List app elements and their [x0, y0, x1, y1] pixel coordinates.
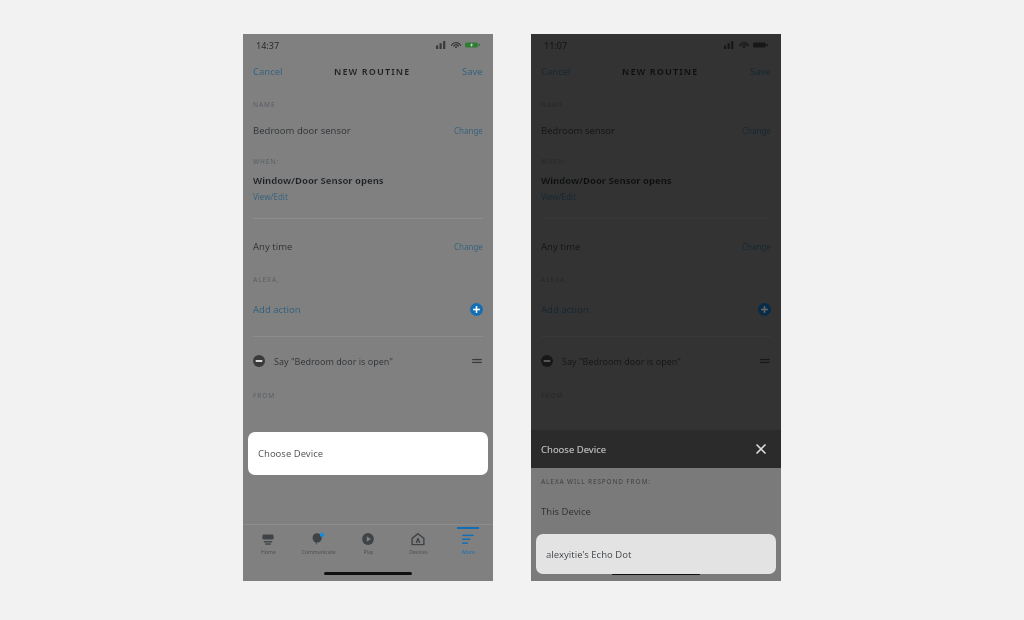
staticText: Bedroom door sensor — [253, 124, 351, 137]
staticText: Save — [750, 65, 771, 78]
staticText: Choose Device — [541, 443, 607, 456]
staticText: Cancel — [253, 65, 283, 78]
staticText: Any time — [253, 240, 293, 253]
staticText: Choose Device — [258, 447, 324, 460]
staticText: Window/Door Sensor opens — [541, 174, 672, 187]
staticText: Window/Door Sensor opens — [253, 174, 384, 187]
staticText: This Device — [541, 505, 591, 518]
button[interactable]: Bedroom sensor — [531, 119, 781, 141]
button[interactable]: More — [443, 525, 493, 565]
staticText: Play — [363, 548, 374, 555]
staticText: View/Edit — [253, 191, 288, 202]
staticText: Change — [454, 241, 483, 252]
staticText: NEW ROUTINE — [334, 65, 411, 77]
button[interactable]: Save — [750, 65, 771, 78]
staticText: Save — [462, 65, 483, 78]
button[interactable]: Close — [754, 442, 768, 456]
staticText: Devices — [409, 548, 428, 555]
button[interactable]: Bedroom door sensor — [243, 119, 493, 141]
button[interactable]: View/Edit — [541, 191, 576, 202]
button[interactable]: Save — [462, 65, 483, 78]
staticText: Cancel — [541, 65, 571, 78]
button[interactable]: Remove action — [531, 349, 781, 373]
button[interactable]: Cancel — [253, 65, 283, 78]
other: Reorder — [759, 355, 771, 367]
staticText: Bedroom sensor — [541, 124, 615, 137]
staticText: FROM — [253, 391, 276, 400]
staticText: Say "Bedroom door is open" — [274, 355, 393, 367]
staticText: FROM — [541, 391, 564, 400]
button[interactable]: Any time — [531, 235, 781, 257]
staticText: View/Edit — [541, 191, 576, 202]
staticText: alexyitie's Echo Dot — [546, 548, 632, 561]
staticText: 14:37 — [256, 39, 280, 51]
button[interactable]: View/Edit — [253, 191, 288, 202]
other: Reorder — [471, 355, 483, 367]
other: Remove action — [253, 355, 265, 367]
staticText: 11:07 — [544, 39, 568, 51]
button[interactable]: Any time — [243, 235, 493, 257]
staticText: Add action — [253, 303, 301, 316]
button[interactable]: Home — [243, 525, 293, 565]
staticText: Change — [742, 125, 771, 136]
staticText: ALEXA, — [253, 275, 280, 284]
button[interactable]: Remove action — [243, 349, 493, 373]
staticText: ALEXA WILL RESPOND FROM: — [541, 477, 651, 486]
button[interactable]: Choose Device — [248, 432, 488, 475]
staticText: NAME — [253, 100, 276, 109]
staticText: NAME — [541, 100, 564, 109]
button[interactable]: Devices — [393, 525, 443, 565]
staticText: More — [462, 548, 475, 555]
button[interactable]: Add action — [531, 296, 781, 322]
staticText: ALEXA, — [541, 275, 568, 284]
button[interactable]: Add action — [243, 296, 493, 322]
staticText: NEW ROUTINE — [622, 65, 699, 77]
button[interactable]: alexyitie's Echo Dot — [536, 534, 776, 574]
staticText: Communicate — [301, 548, 336, 555]
staticText: Home — [261, 548, 276, 555]
staticText: WHEN: — [253, 157, 279, 166]
button[interactable]: This Device — [531, 500, 781, 522]
button[interactable]: Play — [343, 525, 393, 565]
staticText: Change — [742, 241, 771, 252]
button[interactable]: Cancel — [541, 65, 571, 78]
staticText: Add action — [541, 303, 589, 316]
button[interactable]: Communicate — [293, 525, 343, 565]
staticText: Any time — [541, 240, 581, 253]
staticText: WHEN: — [541, 157, 567, 166]
other: Remove action — [541, 355, 553, 367]
staticText: Change — [454, 125, 483, 136]
staticText: Say "Bedroom door is open" — [562, 355, 681, 367]
